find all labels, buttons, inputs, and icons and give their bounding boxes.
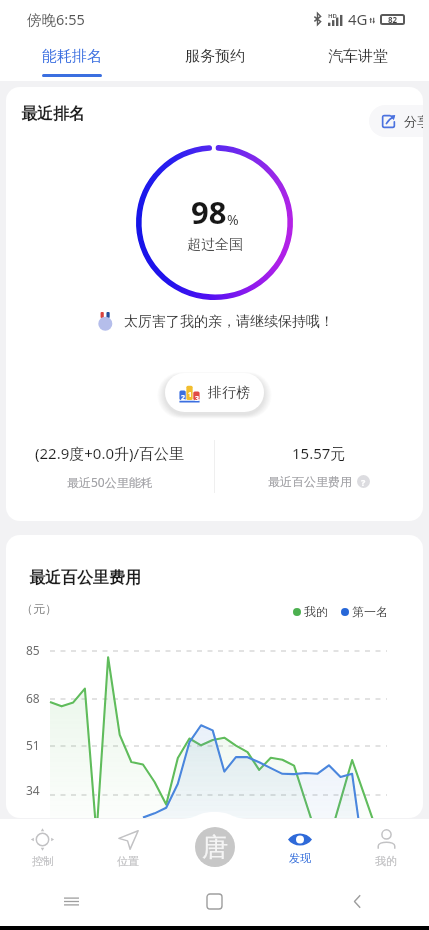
staticText: %: [227, 210, 239, 229]
staticText: 控制: [32, 854, 54, 868]
staticText: 发现: [289, 851, 311, 865]
staticText: 85: [26, 642, 40, 658]
staticText: (22.9度+0.0升)/百公里: [35, 443, 185, 463]
staticText: （元）: [21, 601, 57, 616]
button[interactable]: 能耗排名: [0, 38, 143, 81]
staticText: 我的: [304, 604, 328, 619]
staticText: 最近排名: [21, 104, 85, 124]
button[interactable]: 发现: [257, 819, 343, 877]
staticText: 能耗排名: [42, 47, 102, 66]
staticText: HD: [328, 12, 337, 20]
button[interactable]: 分享: [369, 105, 423, 137]
staticText: 4G: [348, 9, 368, 29]
staticText: 超过全国: [187, 236, 243, 254]
staticText: 34: [26, 782, 40, 798]
staticText: 分享: [404, 113, 423, 129]
button[interactable]: 2: [165, 373, 264, 412]
staticText: 我的: [375, 854, 397, 868]
staticText: 2: [181, 393, 186, 403]
button[interactable]: 控制: [0, 819, 85, 877]
staticText: 位置: [117, 854, 139, 868]
staticText: 最近50公里能耗: [67, 474, 153, 490]
staticText: 15.57元: [292, 443, 346, 463]
staticText: 最近百公里费用: [268, 474, 352, 489]
staticText: 唐: [202, 831, 228, 864]
staticText: 98: [191, 191, 227, 233]
button[interactable]: 语音助手: [195, 827, 235, 867]
button[interactable]: 位置: [85, 819, 171, 877]
staticText: 汽车讲堂: [328, 47, 388, 66]
button[interactable]: 汽车讲堂: [286, 38, 429, 81]
button[interactable]: Recents: [0, 877, 143, 926]
staticText: 68: [26, 690, 40, 706]
staticText: 第一名: [352, 604, 388, 619]
button[interactable]: 服务预约: [143, 38, 286, 81]
staticText: 51: [26, 737, 40, 753]
staticText: 排行榜: [208, 384, 250, 402]
staticText: 太厉害了我的亲，请继续保持哦！: [124, 313, 334, 331]
button[interactable]: 我的: [343, 819, 429, 877]
staticText: 服务预约: [185, 47, 245, 66]
staticText: 1: [188, 390, 193, 400]
button[interactable]: Home: [143, 877, 286, 926]
staticText: 最近百公里费用: [29, 568, 141, 588]
staticText: 傍晚6:55: [27, 9, 85, 29]
staticText: ?: [361, 476, 366, 488]
staticText: 82: [388, 14, 398, 25]
staticText: 3: [195, 394, 200, 404]
button[interactable]: Back: [286, 877, 429, 926]
